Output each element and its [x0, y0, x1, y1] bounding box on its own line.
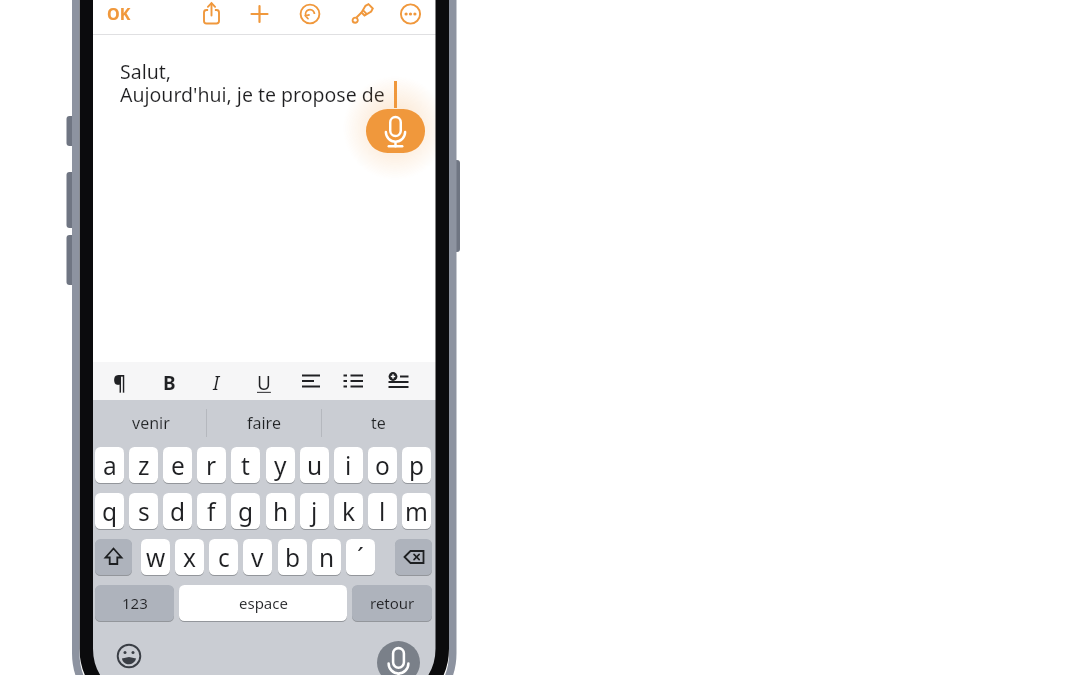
- button[interactable]: o: [368, 447, 397, 483]
- staticText: retour: [370, 593, 415, 613]
- button[interactable]: [113, 640, 145, 672]
- button[interactable]: faire: [219, 409, 309, 437]
- button[interactable]: te: [333, 409, 423, 437]
- staticText: c: [218, 541, 230, 574]
- staticText: w: [146, 541, 166, 574]
- staticText: ¶: [113, 369, 126, 396]
- button[interactable]: v: [243, 539, 272, 575]
- staticText: 123: [122, 593, 148, 613]
- button[interactable]: OK: [103, 2, 135, 26]
- button[interactable]: t: [231, 447, 260, 483]
- button[interactable]: r: [197, 447, 226, 483]
- button[interactable]: [377, 641, 420, 675]
- button[interactable]: [295, 366, 327, 396]
- staticText: g: [238, 495, 254, 528]
- staticText: espace: [239, 593, 288, 613]
- staticText: e: [171, 449, 185, 482]
- button[interactable]: [197, 0, 227, 28]
- staticText: j: [311, 495, 318, 528]
- staticText: h: [273, 495, 289, 528]
- button[interactable]: [395, 539, 432, 575]
- button[interactable]: u: [300, 447, 329, 483]
- staticText: u: [307, 449, 323, 482]
- button[interactable]: i: [334, 447, 363, 483]
- staticText: z: [138, 449, 150, 482]
- button[interactable]: s: [129, 493, 158, 529]
- staticText: o: [375, 449, 390, 482]
- button[interactable]: q: [95, 493, 124, 529]
- staticText: q: [102, 495, 118, 528]
- button[interactable]: [248, 366, 280, 396]
- staticText: ´: [357, 541, 364, 574]
- button[interactable]: [366, 109, 425, 153]
- staticText: te: [371, 412, 386, 434]
- button[interactable]: [245, 0, 275, 28]
- staticText: venir: [132, 412, 170, 434]
- staticText: Aujourd'hui, je te propose de: [120, 81, 385, 108]
- button[interactable]: venir: [106, 409, 196, 437]
- button[interactable]: n: [312, 539, 341, 575]
- button[interactable]: 123: [95, 585, 174, 621]
- button[interactable]: b: [278, 539, 307, 575]
- button[interactable]: f: [197, 493, 226, 529]
- button[interactable]: y: [266, 447, 295, 483]
- button[interactable]: [383, 366, 415, 396]
- staticText: s: [138, 495, 150, 528]
- button[interactable]: e: [163, 447, 192, 483]
- button[interactable]: w: [141, 539, 170, 575]
- button[interactable]: [199, 366, 231, 396]
- button[interactable]: [154, 366, 186, 396]
- staticText: OK: [107, 3, 131, 25]
- button[interactable]: [104, 366, 136, 396]
- button[interactable]: p: [402, 447, 431, 483]
- staticText: t: [241, 449, 250, 482]
- staticText: n: [319, 541, 335, 574]
- staticText: k: [342, 495, 356, 528]
- staticText: Salut,: [120, 58, 171, 85]
- staticText: l: [379, 495, 386, 528]
- staticText: x: [183, 541, 196, 574]
- button[interactable]: [95, 539, 132, 575]
- button[interactable]: m: [402, 493, 431, 529]
- button[interactable]: [396, 0, 426, 28]
- staticText: d: [170, 495, 186, 528]
- button[interactable]: k: [334, 493, 363, 529]
- button[interactable]: z: [129, 447, 158, 483]
- staticText: faire: [247, 412, 281, 434]
- button[interactable]: [295, 0, 325, 28]
- button[interactable]: l: [368, 493, 397, 529]
- button[interactable]: ´: [346, 539, 375, 575]
- staticText: a: [103, 449, 117, 482]
- button[interactable]: espace: [179, 585, 347, 621]
- staticText: p: [409, 449, 425, 482]
- button[interactable]: [348, 0, 378, 28]
- staticText: I: [213, 370, 220, 396]
- staticText: y: [274, 449, 287, 482]
- staticText: m: [405, 495, 428, 528]
- staticText: r: [206, 449, 217, 482]
- button[interactable]: retour: [352, 585, 432, 621]
- staticText: i: [345, 449, 352, 482]
- button[interactable]: d: [163, 493, 192, 529]
- button[interactable]: [337, 366, 369, 396]
- button[interactable]: h: [266, 493, 295, 529]
- staticText: f: [207, 495, 216, 528]
- button[interactable]: c: [209, 539, 238, 575]
- staticText: v: [251, 541, 264, 574]
- button[interactable]: j: [300, 493, 329, 529]
- staticText: b: [285, 541, 301, 574]
- button[interactable]: a: [95, 447, 124, 483]
- button[interactable]: g: [231, 493, 260, 529]
- staticText: U: [257, 370, 271, 396]
- staticText: B: [163, 370, 176, 396]
- button[interactable]: x: [175, 539, 204, 575]
